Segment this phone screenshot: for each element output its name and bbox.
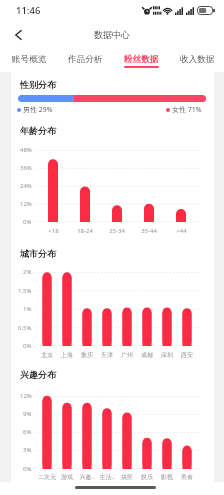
staticText: 男性 29%: [23, 105, 53, 115]
button[interactable]: 粉丝数据: [113, 47, 169, 72]
button[interactable]: 作品分析: [57, 47, 113, 72]
staticText: 24%: [20, 182, 32, 190]
staticText: >44: [176, 227, 187, 235]
staticText: 年龄分布: [20, 125, 56, 136]
staticText: 城市分布: [20, 248, 56, 259]
staticText: 兴趣..: [79, 473, 95, 481]
staticText: 深圳: [161, 351, 173, 359]
staticText: 2%: [23, 268, 32, 276]
staticText: 女性 71%: [172, 105, 202, 115]
staticText: 1%: [23, 305, 32, 313]
staticText: 0%: [23, 218, 32, 226]
staticText: 0%: [23, 465, 32, 473]
staticText: <18: [48, 227, 59, 235]
staticText: 西安: [181, 351, 193, 359]
staticText: 25-34: [109, 227, 125, 235]
staticText: 12%: [20, 392, 32, 400]
staticText: 11:46: [16, 4, 41, 17]
button[interactable]: 收入数据: [169, 47, 224, 72]
staticText: 游戏: [61, 473, 73, 481]
staticText: 3%: [23, 446, 32, 454]
staticText: 12%: [20, 200, 32, 208]
staticText: 娱乐: [141, 473, 153, 481]
staticText: 36%: [20, 164, 32, 172]
staticText: 账号概览: [12, 54, 47, 65]
staticText: 1.5%: [18, 287, 32, 295]
staticText: 搞笑: [121, 473, 133, 481]
staticText: 广州: [121, 351, 133, 359]
staticText: 二次元: [38, 473, 56, 481]
staticText: 作品分析: [68, 54, 103, 65]
staticText: 18-24: [77, 227, 93, 235]
staticText: 粉丝数据: [124, 54, 159, 65]
staticText: 美食: [181, 473, 193, 481]
staticText: 数据中心: [94, 29, 130, 40]
staticText: 性别分布: [20, 79, 56, 90]
staticText: 重庆: [81, 351, 93, 359]
staticText: 0%: [23, 342, 32, 350]
staticText: 6%: [23, 428, 32, 436]
staticText: 35-44: [141, 227, 157, 235]
staticText: 上海: [61, 351, 73, 359]
staticText: 0.5%: [18, 324, 32, 332]
staticText: 9%: [23, 410, 32, 418]
staticText: 兴趣分布: [20, 369, 56, 380]
staticText: 48%: [20, 146, 32, 154]
button[interactable]: 账号概览: [2, 47, 57, 72]
staticText: 影视: [161, 473, 173, 481]
staticText: 天津: [101, 351, 113, 359]
staticText: 生活..: [99, 473, 115, 481]
staticText: 成都: [141, 351, 153, 359]
button[interactable]: Back: [6, 23, 29, 46]
staticText: 收入数据: [180, 54, 215, 65]
staticText: 北京: [41, 351, 53, 359]
